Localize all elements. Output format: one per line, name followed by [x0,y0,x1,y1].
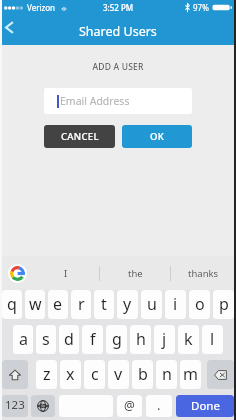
button[interactable]: m [180,360,201,389]
staticText: t [101,293,107,315]
button[interactable]: Google [8,264,27,283]
staticText: Done [191,398,220,414]
staticText: ADD A USER [0,61,236,73]
button[interactable]: w [25,290,45,319]
button[interactable]: l [202,325,223,354]
button[interactable]: b [132,360,153,389]
staticText: f [90,328,96,350]
button[interactable]: o [189,290,210,319]
staticText: y [123,293,132,315]
staticText: b [138,363,148,385]
button[interactable]: y [117,290,138,319]
button[interactable]: Email Address [44,88,192,114]
staticText: OK [150,130,165,143]
staticText: Email Address [60,94,130,108]
button[interactable]: z [36,360,57,389]
staticText: p [219,293,229,315]
staticText: z [43,363,51,385]
button[interactable]: Shift [2,360,28,389]
staticText: m [183,363,198,385]
button[interactable]: c [84,360,105,389]
staticText: e [53,293,63,315]
button[interactable]: OK [122,125,192,148]
button[interactable]: a [13,325,33,354]
staticText: Verizon [27,2,56,13]
staticText: I [64,267,68,280]
button[interactable]: Backspace [207,360,234,389]
staticText: i [173,293,178,315]
staticText: 97% [193,2,209,13]
button[interactable]: CANCEL [44,125,115,148]
staticText: w [29,293,42,315]
staticText: Shared Users [79,23,157,40]
staticText: n [162,363,172,385]
button[interactable]: n [156,360,177,389]
staticText: . [157,396,161,414]
button[interactable]: k [178,325,199,354]
staticText: q [7,293,17,315]
button[interactable]: the [100,256,170,290]
button[interactable]: I [32,256,99,290]
button[interactable]: x [60,360,81,389]
button[interactable]: d [59,325,79,354]
button[interactable]: p [213,290,234,319]
staticText: @ [124,397,135,413]
staticText: d [64,328,74,350]
button[interactable]: e [48,290,68,319]
button[interactable]: i [165,290,186,319]
staticText: j [162,328,167,350]
button[interactable]: . [146,395,172,417]
staticText: thanks [188,267,219,280]
staticText: k [184,328,193,350]
staticText: CANCEL [61,130,99,143]
button[interactable]: u [141,290,162,319]
button[interactable]: @ [117,395,142,417]
staticText: 123 [5,397,25,413]
staticText: h [136,328,146,350]
button[interactable]: v [108,360,129,389]
staticText: o [195,293,205,315]
staticText: a [19,328,28,350]
staticText: u [147,293,157,315]
button[interactable]: g [106,325,127,354]
button[interactable]: Done [176,395,234,417]
button[interactable]: Change language [31,395,55,417]
staticText: s [42,328,50,350]
button[interactable]: r [71,290,91,319]
button[interactable]: s [36,325,56,354]
staticText: 3:52 PM [103,2,134,13]
button[interactable]: 123 [2,395,28,417]
button[interactable]: h [130,325,151,354]
staticText: x [66,363,75,385]
button[interactable]: Back [0,12,20,42]
staticText: g [112,328,122,350]
button[interactable]: f [82,325,103,354]
staticText: r [78,293,85,315]
button[interactable]: j [154,325,175,354]
button[interactable]: q [2,290,22,319]
button[interactable]: t [94,290,114,319]
button[interactable]: thanks [171,256,236,290]
staticText: c [91,363,99,385]
staticText: v [114,363,123,385]
staticText: l [210,328,215,350]
staticText: the [128,267,143,280]
